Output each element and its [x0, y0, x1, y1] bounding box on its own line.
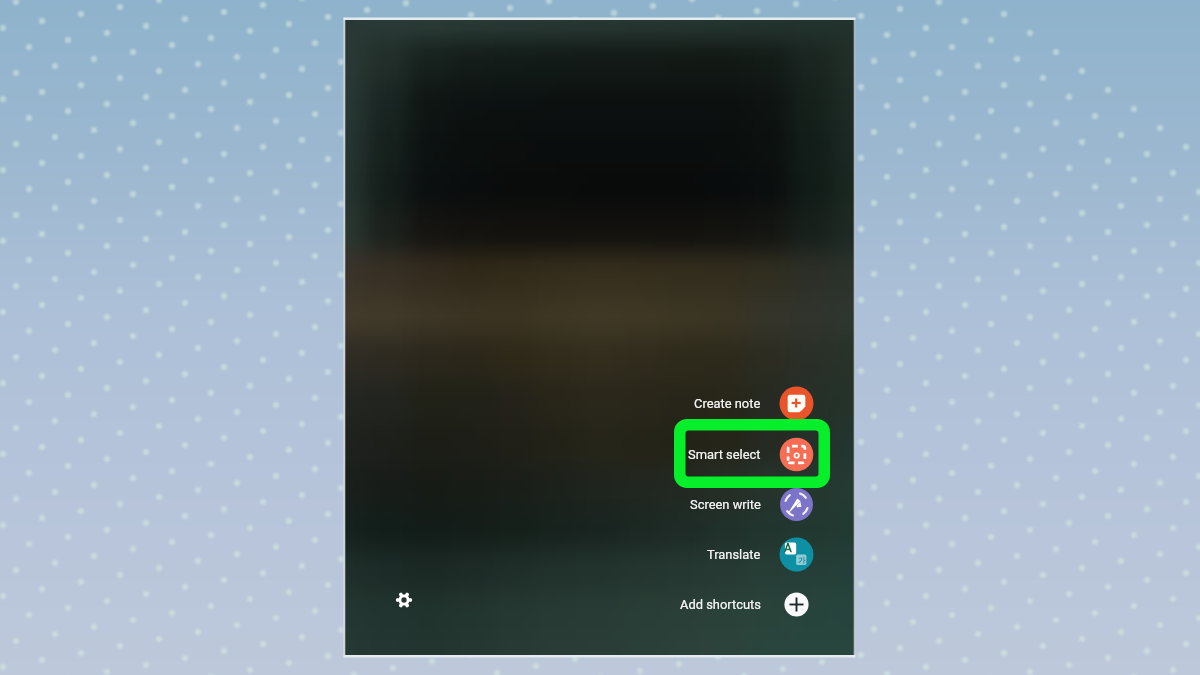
button[interactable]: Translate [660, 531, 814, 577]
staticText: Create note [694, 396, 761, 411]
staticText: Screen write [690, 497, 761, 512]
staticText: A [784, 541, 792, 555]
staticText: Add shortcuts [680, 597, 761, 612]
button[interactable]: Smart select [660, 431, 814, 477]
button[interactable]: Settings [391, 587, 417, 613]
staticText: Smart select [688, 447, 761, 462]
button[interactable]: Create note [660, 380, 814, 426]
button[interactable]: Screen write [660, 481, 814, 527]
staticText: Translate [707, 547, 761, 562]
staticText: 가 [798, 555, 806, 565]
button[interactable]: Add shortcuts [660, 581, 814, 627]
